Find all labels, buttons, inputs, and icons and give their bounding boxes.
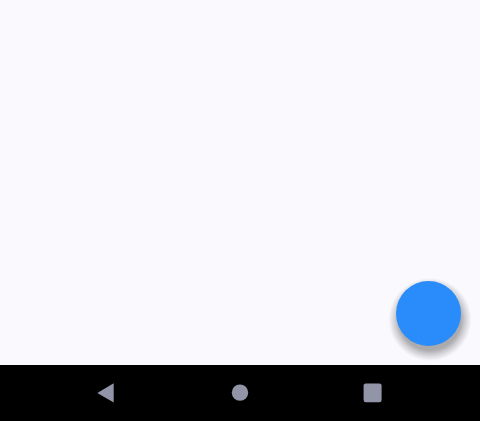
button[interactable] xyxy=(82,369,130,417)
button[interactable] xyxy=(396,281,461,346)
button[interactable] xyxy=(216,369,264,417)
button[interactable] xyxy=(349,369,397,417)
